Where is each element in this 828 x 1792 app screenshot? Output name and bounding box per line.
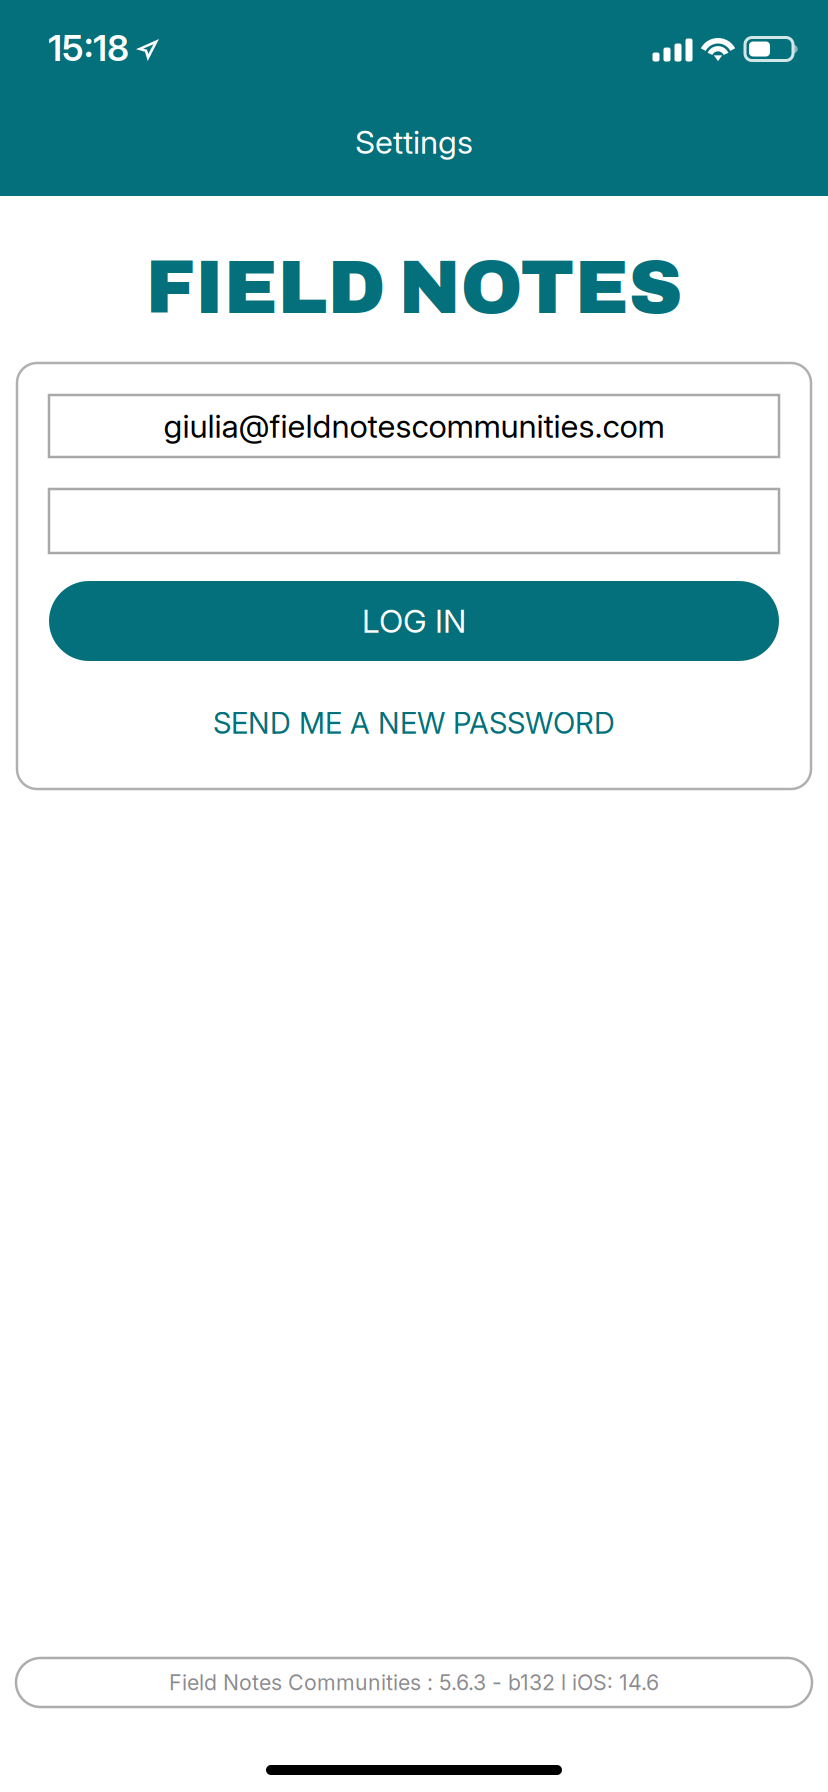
staticText: Field Notes Communities : 5.6.3 - b132 l… bbox=[169, 1670, 659, 1695]
staticText: LOG IN bbox=[362, 602, 466, 640]
staticText: Settings bbox=[355, 123, 473, 161]
staticText: giulia@fieldnotescommunities.com bbox=[163, 407, 664, 445]
button[interactable]: LOG IN bbox=[49, 581, 779, 661]
staticText: 15:18 bbox=[48, 26, 129, 70]
staticText: SEND ME A NEW PASSWORD bbox=[213, 705, 615, 741]
button[interactable]: SEND ME A NEW PASSWORD bbox=[49, 693, 779, 753]
staticText: FIELD NOTES bbox=[145, 247, 682, 329]
